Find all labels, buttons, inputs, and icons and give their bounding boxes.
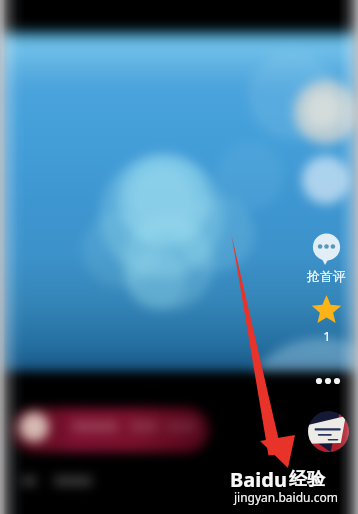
button[interactable]: Comment — [304, 228, 349, 284]
staticText: 经验 — [289, 468, 325, 491]
button[interactable]: More options — [310, 369, 346, 393]
staticText: 1 — [323, 327, 331, 345]
button[interactable]: Favorite — [306, 294, 347, 346]
staticText: Baidu — [230, 466, 287, 493]
staticText: jingyan.baidu.com — [234, 489, 338, 505]
staticText: 抢首评 — [307, 268, 346, 284]
button[interactable]: Profile — [308, 411, 349, 452]
